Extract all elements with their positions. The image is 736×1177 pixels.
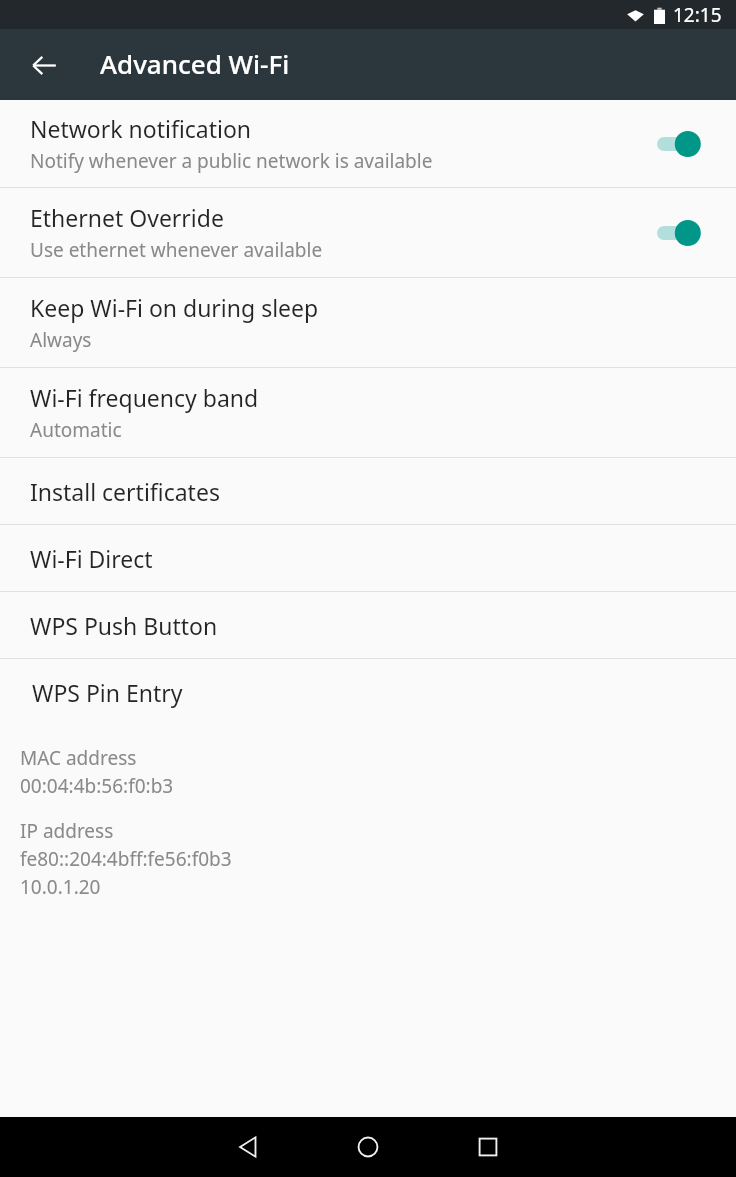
staticText: 00:04:4b:56:f0:b3 (20, 773, 174, 799)
button[interactable]: Back (212, 1117, 284, 1177)
staticText: WPS Pin Entry (32, 677, 183, 708)
staticText: Always (30, 327, 92, 353)
button[interactable]: Wi-Fi Direct (0, 525, 736, 591)
staticText: 10.0.1.20 (20, 874, 101, 900)
button[interactable]: Ethernet Override (0, 188, 736, 277)
button[interactable]: Keep Wi-Fi on during sleep (0, 278, 736, 367)
button[interactable]: Back (16, 37, 72, 93)
staticText: Ethernet Override (30, 202, 224, 233)
staticText: 12:15 (673, 2, 722, 28)
staticText: Notify whenever a public network is avai… (30, 148, 433, 174)
button[interactable]: Network notification (0, 100, 736, 187)
button[interactable]: Wi-Fi frequency band (0, 368, 736, 457)
staticText: Wi-Fi Direct (30, 543, 153, 574)
staticText: MAC address (20, 745, 137, 771)
staticText: WPS Push Button (30, 610, 218, 641)
staticText: IP address (20, 818, 114, 844)
button[interactable]: WPS Push Button (0, 592, 736, 658)
staticText: Wi-Fi frequency band (30, 382, 259, 413)
button[interactable]: Recent apps (452, 1117, 524, 1177)
staticText: Network notification (30, 113, 252, 144)
staticText: Keep Wi-Fi on during sleep (30, 292, 319, 323)
staticText: fe80::204:4bff:fe56:f0b3 (20, 846, 232, 872)
staticText: Advanced Wi-Fi (100, 46, 290, 81)
staticText: Automatic (30, 417, 122, 443)
staticText: Use ethernet whenever available (30, 237, 323, 263)
button[interactable]: Install certificates (0, 458, 736, 524)
button[interactable]: WPS Pin Entry (0, 659, 736, 725)
staticText: Install certificates (30, 476, 220, 507)
button[interactable]: Home (332, 1117, 404, 1177)
